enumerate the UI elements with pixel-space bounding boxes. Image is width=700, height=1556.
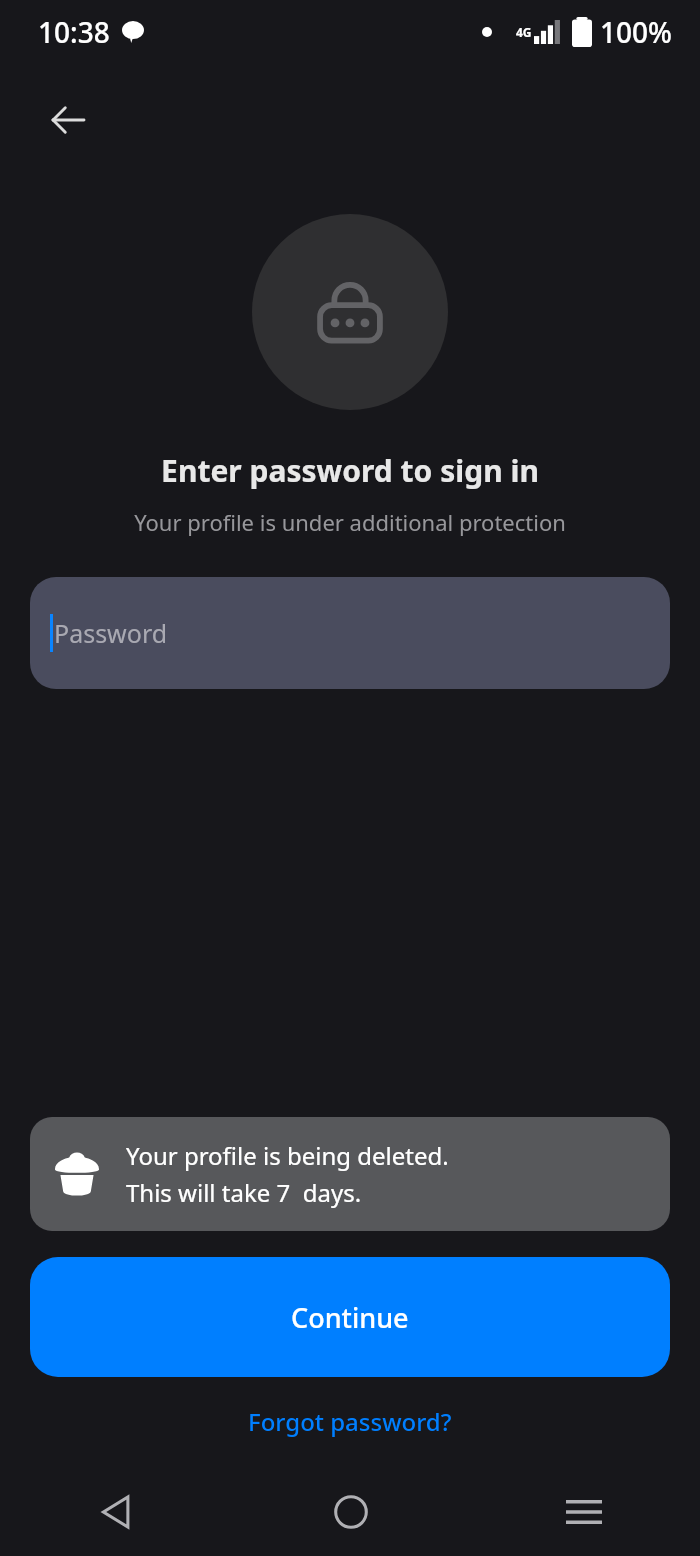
staticText: Your profile is under additional protect… [0, 507, 700, 537]
staticText: 10:38 [38, 13, 110, 51]
button[interactable]: Your profile is being deleted. [30, 1117, 670, 1231]
staticText: Forgot password? [248, 1405, 452, 1438]
button[interactable]: Recent apps [467, 1468, 700, 1556]
staticText: Enter password to sign in [0, 450, 700, 491]
button[interactable]: Password [30, 577, 670, 689]
staticText: 100% [600, 13, 672, 51]
staticText: Password [54, 616, 168, 650]
button[interactable]: Back [0, 1468, 234, 1556]
staticText: 4G [516, 24, 532, 40]
staticText: Your profile is being deleted. [126, 1139, 449, 1172]
staticText: Continue [291, 1299, 409, 1336]
staticText: This will take 7 days. [126, 1176, 362, 1209]
button[interactable]: Forgot password? [234, 1397, 466, 1446]
button[interactable]: Back [36, 88, 100, 152]
button[interactable]: Home [234, 1468, 467, 1556]
button[interactable]: Continue [30, 1257, 670, 1377]
